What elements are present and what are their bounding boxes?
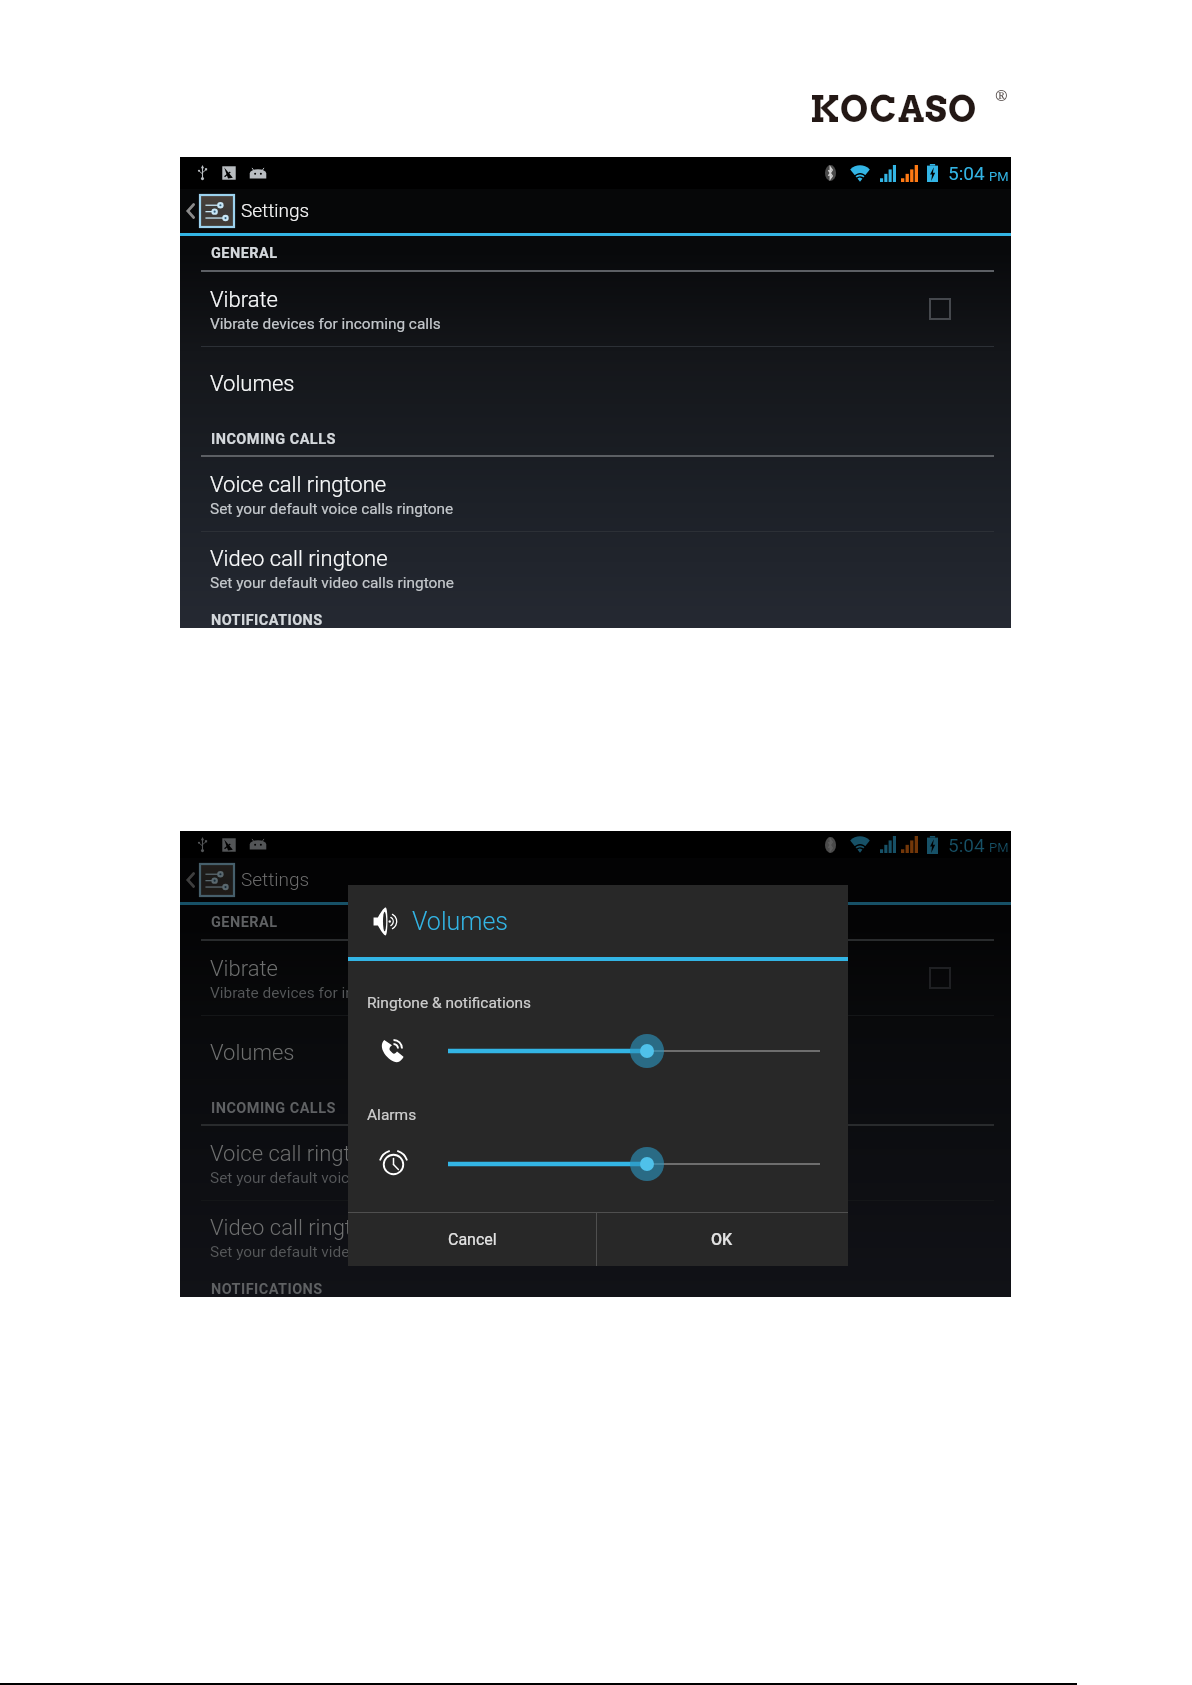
staticText: Volumes (210, 1040, 295, 1066)
staticText: ® (995, 85, 1008, 105)
staticText: GENERAL (211, 914, 278, 931)
staticText: 5:04 (948, 834, 985, 856)
staticText: PM (989, 169, 1009, 184)
staticText: Volumes (412, 907, 508, 936)
button[interactable]: Navigate up (180, 189, 1011, 233)
staticText: Alarms (367, 1106, 417, 1124)
button[interactable] (180, 273, 1011, 341)
button[interactable] (180, 1127, 1011, 1195)
staticText: Set your default video calls ringtone (210, 1243, 454, 1261)
staticText: INCOMING CALLS (211, 1100, 336, 1117)
other: Volume slider (448, 1144, 820, 1184)
staticText: Vibrate (210, 956, 278, 982)
staticText: Vibrate devices for incoming calls (210, 315, 441, 333)
button[interactable]: Cancel (348, 1213, 596, 1266)
staticText: Settings (241, 868, 310, 890)
button[interactable] (180, 1201, 1011, 1269)
staticText: Video call ringtone (210, 546, 388, 572)
button[interactable]: OK (597, 1213, 847, 1266)
staticText: Volumes (210, 371, 295, 397)
staticText: PM (989, 840, 1009, 855)
staticText: Set your default voice calls ringtone (210, 500, 454, 518)
staticText: Set your default voice calls ringtone (210, 1169, 454, 1187)
staticText: GENERAL (211, 245, 278, 262)
staticText: Set your default video calls ringtone (210, 574, 454, 592)
button[interactable] (180, 1018, 1011, 1084)
other: Navigate up (186, 871, 195, 889)
staticText: Voice call ringtone (210, 472, 387, 498)
staticText: OK (711, 1230, 733, 1249)
button[interactable] (180, 532, 1011, 600)
button[interactable]: Navigate up (180, 858, 1011, 902)
staticText: INCOMING CALLS (211, 431, 336, 448)
button[interactable] (180, 458, 1011, 526)
staticText: Vibrate devices for incoming calls (210, 984, 441, 1002)
staticText: Video call ringtone (210, 1215, 388, 1241)
staticText: Voice call ringtone (210, 1141, 387, 1167)
button[interactable]: Vibrate checkbox (922, 960, 958, 996)
other: Volume slider (448, 1031, 820, 1071)
staticText: KOCASO (810, 87, 978, 130)
staticText: Settings (241, 199, 310, 221)
staticText: Cancel (448, 1230, 497, 1249)
staticText: NOTIFICATIONS (211, 1281, 323, 1297)
button[interactable] (180, 942, 1011, 1010)
staticText: 5:04 (948, 162, 985, 184)
button[interactable] (180, 349, 1011, 415)
staticText: Vibrate (210, 287, 278, 313)
staticText: Ringtone & notifications (367, 994, 532, 1012)
other: Navigate up (186, 202, 195, 220)
button[interactable]: Vibrate checkbox (922, 291, 958, 327)
staticText: NOTIFICATIONS (211, 612, 323, 629)
